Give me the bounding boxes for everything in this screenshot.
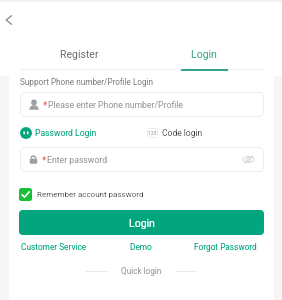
staticText: Support Phone number/Profile Login (20, 77, 154, 87)
button[interactable]: Forgot Password (194, 242, 257, 252)
button[interactable]: Register (17, 44, 142, 64)
staticText: Password Login (35, 128, 97, 138)
staticText: Remember account password (37, 190, 144, 199)
button[interactable]: Login (19, 210, 264, 235)
button[interactable]: Back (0, 9, 22, 31)
button[interactable]: Demo (130, 242, 152, 252)
staticText: Register (60, 48, 99, 60)
button[interactable]: Show password (242, 153, 255, 166)
staticText: Code login (162, 128, 203, 138)
staticText: Login (191, 48, 217, 60)
staticText: Quick login (121, 266, 162, 276)
button[interactable]: * (28, 92, 255, 117)
button[interactable]: Remember account password (19, 188, 144, 201)
staticText: 123 (148, 130, 157, 136)
button[interactable]: Password Login (20, 127, 97, 139)
button[interactable]: 123 (147, 128, 203, 138)
staticText: * (42, 155, 47, 167)
button[interactable]: * (28, 147, 255, 172)
staticText: Please enter Phone number/Profile (48, 100, 183, 110)
button[interactable]: Customer Service (21, 242, 87, 252)
staticText: Login (129, 217, 155, 229)
staticText: Enter password (47, 155, 108, 165)
button[interactable]: Login (142, 44, 266, 64)
staticText: * (43, 100, 48, 112)
